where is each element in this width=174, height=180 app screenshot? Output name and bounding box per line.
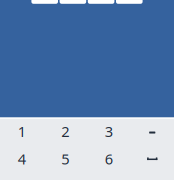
button[interactable]: 3 <box>87 117 130 145</box>
staticText: 4 <box>18 149 26 168</box>
staticText: 1 <box>18 121 26 141</box>
button[interactable]: Space <box>130 145 174 172</box>
button[interactable]: 2 <box>43 117 87 145</box>
button[interactable]: 4 <box>0 145 43 172</box>
button[interactable]: 1 <box>0 117 43 145</box>
button[interactable]: Minus <box>130 117 174 145</box>
staticText: 2 <box>61 121 69 141</box>
staticText: 6 <box>105 149 113 168</box>
staticText: 5 <box>61 149 69 168</box>
button[interactable]: 5 <box>43 145 87 172</box>
button[interactable]: 6 <box>87 145 130 172</box>
staticText: 3 <box>105 121 113 141</box>
